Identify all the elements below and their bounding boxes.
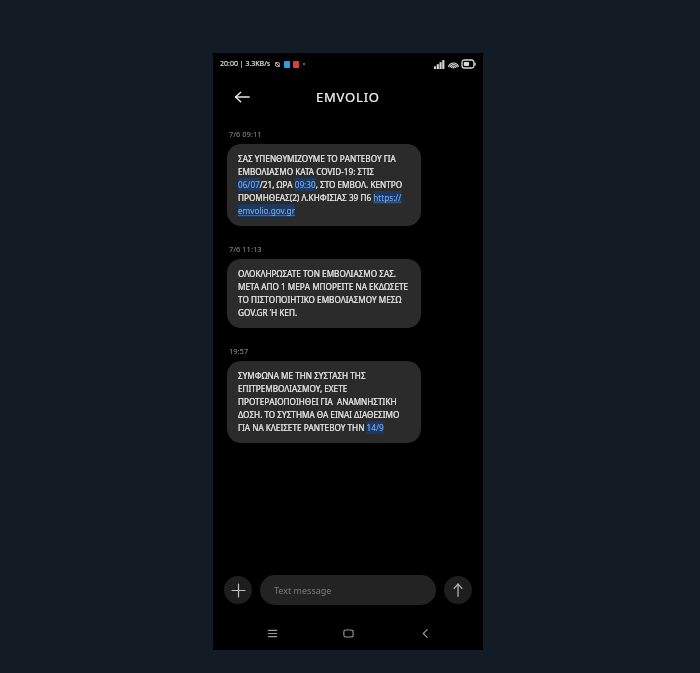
staticText: ΟΛΟΚΛΗΡΩΣΑΤΕ ΤΟΝ ΕΜΒΟΛΙΑΣΜΟ ΣΑΣ. ΜΕΤΑ ΑΠ… [238, 268, 410, 319]
button[interactable]: Add attachment [224, 576, 252, 604]
button[interactable]: Text message [260, 575, 436, 605]
button[interactable]: ΣΑΣ ΥΠΕΝΘΥΜΙΖΟΥΜΕ ΤΟ ΡΑΝΤΕΒΟΥ ΓΙΑ ΕΜΒΟΛΙ… [227, 144, 421, 226]
button[interactable]: ΣΥΜΦΩΝΑ ΜΕ ΤΗΝ ΣΥΣΤΑΣΗ ΤΗΣ ΕΠΙΤΡΕΜΒΟΛΙΑΣ… [227, 361, 421, 443]
button[interactable]: ΟΛΟΚΛΗΡΩΣΑΤΕ ΤΟΝ ΕΜΒΟΛΙΑΣΜΟ ΣΑΣ. ΜΕΤΑ ΑΠ… [227, 259, 421, 328]
staticText: Text message [274, 584, 332, 596]
staticText: ΣΑΣ ΥΠΕΝΘΥΜΙΖΟΥΜΕ ΤΟ ΡΑΝΤΕΒΟΥ ΓΙΑ ΕΜΒΟΛΙ… [238, 153, 410, 217]
staticText: 7/6 11:13 [229, 244, 262, 254]
button[interactable]: Send [444, 576, 472, 604]
button[interactable]: Back [227, 82, 257, 112]
staticText: ΣΥΜΦΩΝΑ ΜΕ ΤΗΝ ΣΥΣΤΑΣΗ ΤΗΣ ΕΠΙΤΡΕΜΒΟΛΙΑΣ… [238, 370, 410, 434]
staticText: 7/6 09:11 [229, 129, 262, 139]
button[interactable]: Recent apps [254, 616, 290, 650]
staticText: 20:00 | 3.3KB/s [220, 59, 271, 69]
button[interactable]: Home [330, 616, 366, 650]
staticText: 19:57 [229, 346, 249, 356]
button[interactable]: Back [407, 616, 443, 650]
staticText: EMVOLIO [316, 88, 380, 106]
